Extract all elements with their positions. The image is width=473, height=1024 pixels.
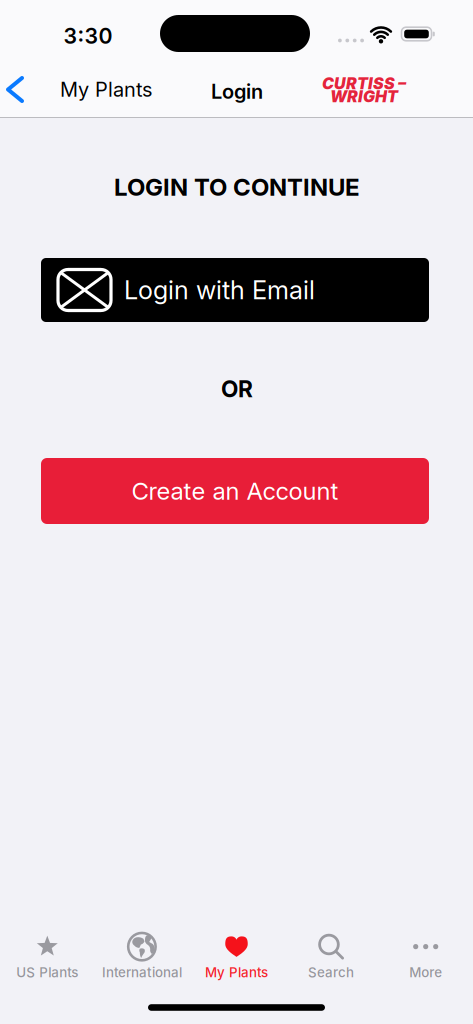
button[interactable]: My Plants bbox=[189, 932, 283, 980]
staticText: International bbox=[102, 965, 182, 980]
staticText: My Plants bbox=[60, 78, 152, 101]
button[interactable]: International bbox=[95, 932, 189, 980]
button[interactable]: More bbox=[379, 932, 473, 980]
staticText: LOGIN TO CONTINUE bbox=[114, 173, 360, 201]
staticText: Login bbox=[211, 80, 263, 103]
staticText: WRIGHT bbox=[330, 87, 398, 106]
button[interactable]: Login with Email bbox=[41, 258, 429, 322]
staticText: US Plants bbox=[16, 965, 78, 980]
staticText: 3:30 bbox=[63, 23, 112, 49]
staticText: My Plants bbox=[205, 965, 268, 980]
staticText: Search bbox=[308, 965, 354, 980]
staticText: More bbox=[409, 965, 442, 980]
button[interactable]: US Plants bbox=[0, 932, 94, 980]
button[interactable]: My Plants bbox=[0, 62, 152, 117]
staticText: OR bbox=[221, 376, 253, 402]
staticText: Login with Email bbox=[124, 275, 315, 305]
staticText: Create an Account bbox=[131, 477, 338, 505]
button[interactable]: Search bbox=[284, 932, 378, 980]
button[interactable]: Create an Account bbox=[41, 458, 429, 524]
staticText: CURTISS – bbox=[322, 74, 406, 93]
